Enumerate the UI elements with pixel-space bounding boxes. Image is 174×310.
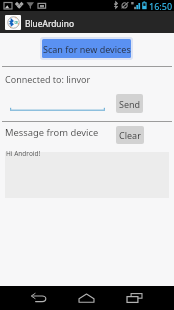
button[interactable]: Home [68, 286, 104, 310]
staticText: Hi Android! [6, 149, 41, 158]
staticText: BlueArduino [25, 18, 74, 29]
staticText: Connected to: linvor [5, 73, 91, 85]
staticText: Message from device [5, 126, 99, 139]
staticText: Scan for new devices [43, 43, 131, 55]
staticText: Clear [119, 129, 141, 141]
staticText: Send [119, 98, 141, 110]
staticText: 16:50 [149, 0, 173, 11]
button[interactable]: Send [116, 94, 143, 113]
button[interactable]: Back [20, 286, 57, 310]
button[interactable]: Scan for new devices [40, 37, 133, 60]
button[interactable]: Clear [116, 126, 144, 144]
button[interactable]: Recent apps [116, 286, 153, 310]
